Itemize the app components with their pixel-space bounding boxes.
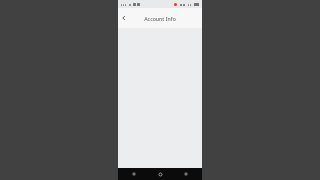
button[interactable]: Home bbox=[152, 168, 168, 180]
staticText: Account Info bbox=[131, 15, 189, 22]
button[interactable]: Back bbox=[118, 8, 130, 28]
button[interactable]: Back bbox=[126, 168, 142, 180]
button[interactable]: Recent apps bbox=[178, 168, 194, 180]
